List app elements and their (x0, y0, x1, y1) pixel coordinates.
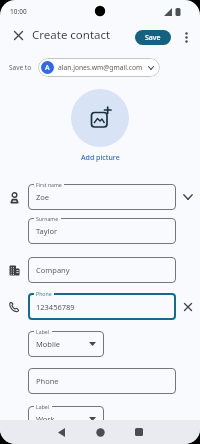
staticText: alan.jones.wm@gmail.com (58, 63, 143, 72)
staticText: Zoe (36, 192, 50, 202)
staticText: Save (145, 33, 161, 43)
staticText: Taylor (36, 226, 58, 236)
staticText: Mobile (36, 339, 61, 349)
button[interactable]: Add picture (81, 153, 120, 163)
button[interactable] (176, 184, 200, 210)
button[interactable] (180, 31, 192, 43)
button[interactable] (10, 27, 26, 43)
staticText: Phone (36, 290, 52, 297)
staticText: 123456789 (36, 302, 75, 312)
staticText: First name (36, 181, 62, 188)
button[interactable]: Taylor (28, 218, 176, 244)
button[interactable]: Company (28, 257, 176, 283)
staticText: A (45, 63, 50, 73)
staticText: Label (36, 403, 50, 410)
staticText: 10:00 (10, 7, 27, 16)
staticText: Save to (9, 63, 32, 72)
button[interactable]: Phone (28, 368, 176, 394)
button[interactable]: A (38, 58, 160, 77)
button[interactable] (94, 426, 106, 438)
staticText: Work (36, 414, 55, 424)
button[interactable] (133, 426, 145, 438)
staticText: Create contact (32, 27, 111, 43)
staticText: Add picture (81, 153, 120, 163)
staticText: Surname (36, 215, 59, 222)
staticText: Company (36, 265, 70, 275)
button[interactable]: Save (135, 30, 171, 45)
button[interactable] (176, 293, 200, 320)
button[interactable]: 123456789 (28, 293, 176, 320)
button[interactable]: Work (28, 406, 104, 432)
staticText: Phone (36, 376, 59, 386)
button[interactable] (55, 426, 67, 438)
button[interactable] (71, 89, 129, 147)
staticText: Label (36, 328, 50, 335)
button[interactable]: Zoe (28, 184, 176, 210)
button[interactable]: Mobile (28, 331, 104, 357)
